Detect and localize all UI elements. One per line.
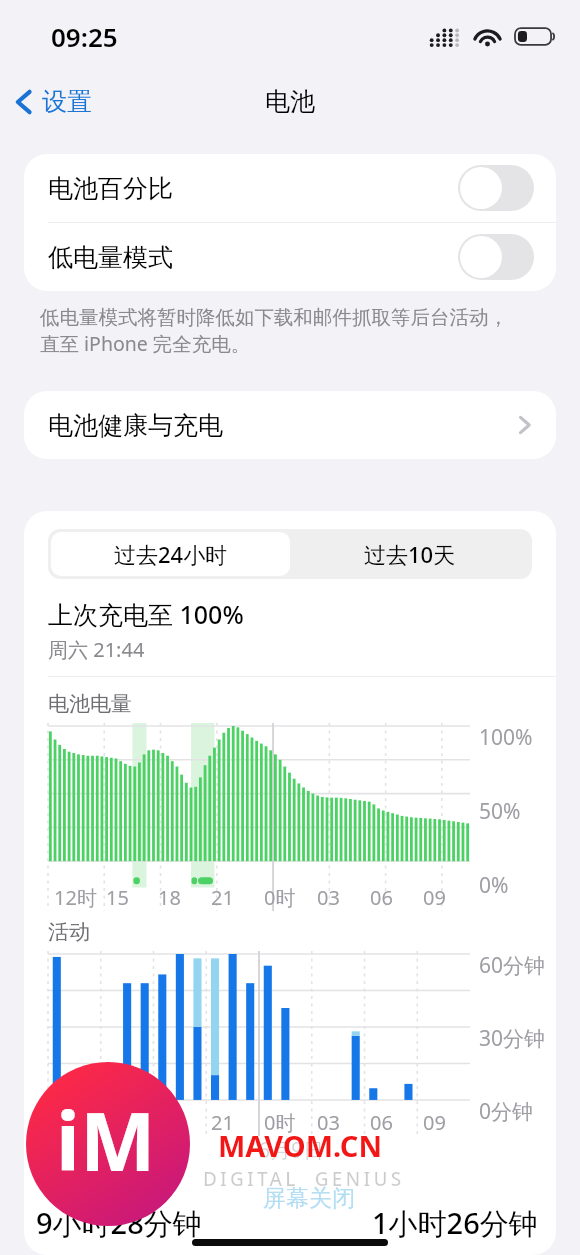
staticText: 电池 — [265, 86, 315, 117]
staticText: 0分钟 — [479, 1097, 534, 1126]
staticText: 0时 — [264, 884, 296, 911]
staticText: 0时 — [264, 1109, 296, 1136]
other: Battery — [515, 26, 556, 47]
staticText: 周六 21:44 — [48, 636, 145, 663]
other: Cellular signal — [429, 27, 460, 47]
staticText: 09:25 — [51, 19, 118, 54]
staticText: 18 — [158, 884, 181, 911]
staticText: 21 — [211, 1109, 234, 1136]
other: Wi-Fi — [473, 26, 502, 47]
staticText: 低电量模式 — [48, 242, 173, 273]
staticText: 直至 iPhone 完全充电。 — [40, 330, 251, 357]
button[interactable]: 过去10天 — [290, 532, 529, 576]
staticText: iM — [56, 1085, 156, 1194]
staticText: 03 — [317, 884, 340, 911]
button[interactable]: 电池百分比 — [24, 154, 556, 222]
staticText: 1小时26分钟 — [372, 1203, 538, 1243]
staticText: 0% — [479, 871, 509, 900]
staticText: 屏幕关闭 — [263, 1184, 355, 1213]
staticText: 30分钟 — [479, 1024, 546, 1053]
staticText: 电池电量 — [48, 691, 132, 717]
staticText: 12时 — [54, 1109, 97, 1136]
button[interactable]: 设置 — [0, 80, 104, 123]
staticText: 设置 — [42, 86, 92, 117]
staticText: 06 — [370, 884, 393, 911]
staticText: 50% — [479, 797, 521, 826]
staticText: 15 — [106, 884, 129, 911]
staticText: 60分钟 — [479, 951, 546, 980]
button[interactable]: 过去24小时 — [51, 532, 290, 576]
staticText: 09 — [423, 1109, 446, 1136]
staticText: 电池健康与充电 — [48, 410, 223, 441]
staticText: MAVOM.CN — [218, 1126, 382, 1165]
staticText: 电池百分比 — [48, 173, 173, 204]
staticText: 09 — [423, 884, 446, 911]
staticText: 过去24小时 — [114, 539, 228, 569]
staticText: 21 — [211, 884, 234, 911]
staticText: 12时 — [54, 884, 97, 911]
staticText: DIGITAL GENIUS — [203, 1166, 405, 1192]
staticText: 过去10天 — [364, 539, 456, 569]
staticText: 6月9日 — [258, 1136, 325, 1165]
button[interactable]: 低电量模式 — [24, 223, 556, 291]
staticText: 03 — [317, 1109, 340, 1136]
staticText: 06 — [370, 1109, 393, 1136]
staticText: 9小时28分钟 — [36, 1203, 202, 1243]
staticText: 15 — [106, 1109, 129, 1136]
button[interactable]: 电池健康与充电 — [24, 391, 556, 459]
staticText: 活动 — [48, 919, 90, 945]
staticText: 低电量模式将暂时降低如下载和邮件抓取等后台活动， — [40, 305, 508, 330]
staticText: 上次充电至 100% — [48, 597, 244, 631]
staticText: 100% — [479, 723, 533, 752]
